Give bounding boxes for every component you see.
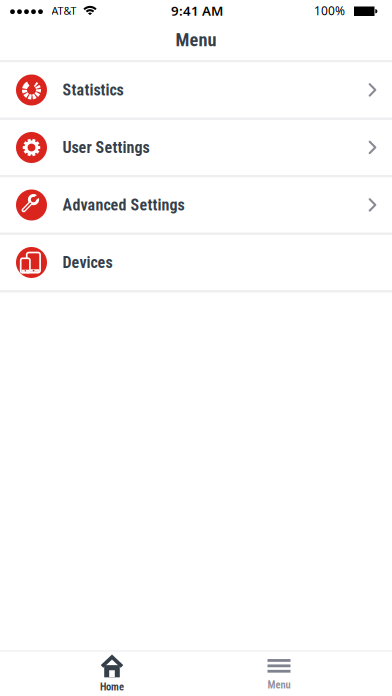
staticText: Menu <box>267 679 290 691</box>
staticText: Statistics <box>62 81 123 99</box>
staticText: Devices <box>62 253 112 272</box>
staticText: AT&T <box>51 3 76 18</box>
staticText: 100% <box>314 2 345 18</box>
staticText: Advanced Settings <box>62 196 184 214</box>
staticText: 9:41 AM <box>171 2 223 19</box>
button[interactable]: Devices <box>0 235 392 290</box>
staticText: User Settings <box>62 138 149 157</box>
staticText: Home <box>100 681 124 693</box>
button[interactable]: User Settings <box>0 120 392 175</box>
button[interactable]: Home <box>42 652 182 696</box>
button[interactable]: Advanced Settings <box>0 177 392 232</box>
button[interactable]: Menu <box>209 653 349 696</box>
button[interactable]: Statistics <box>0 62 392 117</box>
staticText: Menu <box>175 29 216 51</box>
